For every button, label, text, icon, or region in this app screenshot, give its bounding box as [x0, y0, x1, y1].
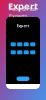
staticText: Expert: [16, 23, 29, 28]
staticText: Face & Hair Experts: [9, 5, 37, 20]
staticText: Expert: [8, 0, 38, 12]
